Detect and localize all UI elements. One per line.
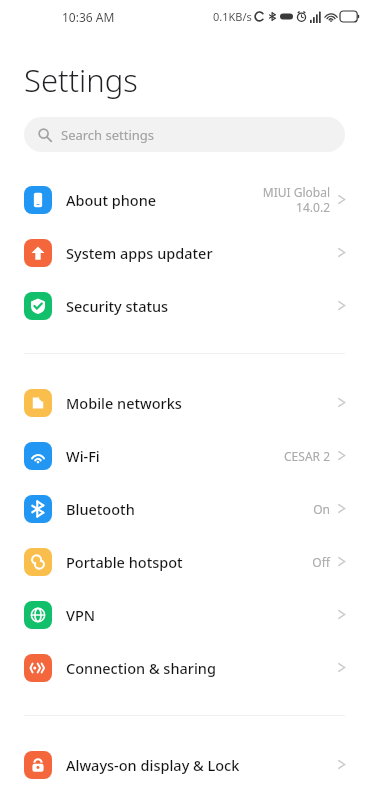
staticText: Wi-Fi (66, 446, 284, 466)
staticText: Bluetooth (66, 499, 313, 519)
button[interactable]: Search settings (24, 117, 345, 152)
staticText: Search settings (61, 126, 155, 144)
staticText: Connection & sharing (66, 658, 337, 678)
staticText: On (313, 501, 330, 517)
staticText: MIUI Global 14.0.2 (262, 184, 330, 215)
button[interactable]: VPN (0, 588, 369, 641)
staticText: Always-on display & Lock (66, 755, 337, 775)
button[interactable]: Always-on display & Lock (0, 738, 369, 791)
staticText: System apps updater (66, 243, 337, 263)
button[interactable]: Portable hotspot (0, 535, 369, 588)
staticText: Security status (66, 296, 337, 316)
button[interactable]: Mobile networks (0, 376, 369, 429)
button[interactable]: System apps updater (0, 226, 369, 279)
staticText: VPN (66, 605, 337, 625)
staticText: CESAR 2 (284, 448, 330, 464)
staticText: 0.1KB/s (213, 9, 252, 24)
button[interactable]: Bluetooth (0, 482, 369, 535)
staticText: About phone (66, 190, 262, 210)
staticText: Portable hotspot (66, 552, 312, 572)
button[interactable]: Wi-Fi (0, 429, 369, 482)
staticText: 10:36 AM (62, 9, 115, 25)
staticText: Settings (24, 59, 138, 101)
staticText: Mobile networks (66, 393, 337, 413)
button[interactable]: Security status (0, 279, 369, 332)
button[interactable]: About phone (0, 173, 369, 226)
staticText: Off (312, 554, 330, 570)
button[interactable]: Connection & sharing (0, 641, 369, 694)
